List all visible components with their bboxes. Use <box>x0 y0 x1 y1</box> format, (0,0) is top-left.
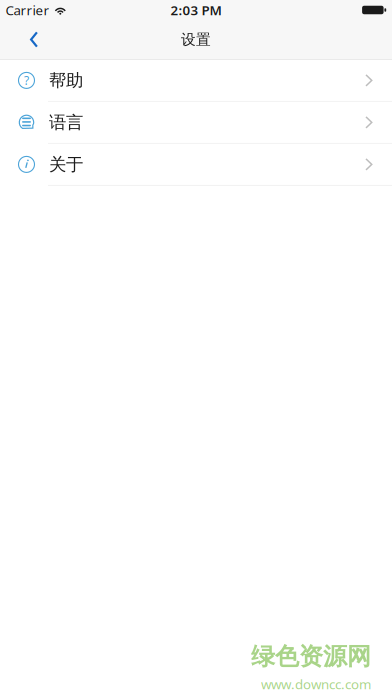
button[interactable]: ? <box>0 60 392 102</box>
staticText: 绿色资源网 <box>251 642 371 671</box>
staticText: www.downcc.com <box>261 675 371 693</box>
staticText: 设置 <box>181 30 211 48</box>
button[interactable]: 语言 <box>0 102 392 144</box>
staticText: 关于 <box>49 154 83 175</box>
staticText: 2:03 PM <box>170 1 221 19</box>
button[interactable]: 关于 <box>0 144 392 186</box>
button[interactable]: Back <box>0 20 48 59</box>
staticText: 帮助 <box>49 70 83 91</box>
staticText: Carrier <box>5 1 49 19</box>
staticText: ? <box>24 72 29 88</box>
staticText: 语言 <box>49 112 83 133</box>
